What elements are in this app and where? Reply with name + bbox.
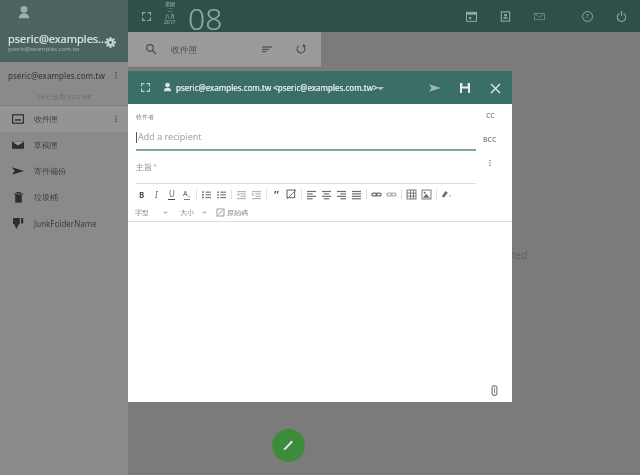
button[interactable]: 主旨 [136,162,476,180]
button[interactable]: 字型 [135,203,149,221]
button[interactable]: Refresh [289,37,313,61]
button[interactable]: Attach [484,380,504,400]
button[interactable]: Insert image [419,185,434,203]
button[interactable]: Insert link [369,185,384,203]
staticText: 八月 [165,13,175,19]
staticText: pseric@examples.com.tw <pseric@examples.… [176,82,378,93]
button[interactable]: Remove link [384,185,399,203]
button[interactable]: Search [134,32,168,66]
staticText: 0% 已使用 3072 MB [37,93,92,101]
staticText: 二 [168,7,173,13]
staticText: ▾ [188,194,191,199]
staticText: 原始碼 [227,208,248,217]
button[interactable]: 原始碼 [217,203,248,221]
staticText: ted [512,248,528,262]
button[interactable]: Text color [179,185,194,203]
staticText: 垃圾桶 [34,192,58,202]
button[interactable]: 收件匣 [0,106,128,132]
staticText: 收件者 [136,113,154,121]
staticText: 收件匣 [34,114,58,124]
button[interactable]: pseric@examples.com.tw [0,62,128,88]
staticText: 字型 [135,208,149,217]
button[interactable]: Power [608,3,634,29]
button[interactable]: Quote [269,185,284,203]
staticText: I [155,189,158,200]
button[interactable]: Align left [304,185,319,203]
staticText: ” [274,187,279,202]
button[interactable]: 垃圾桶 [0,184,128,210]
staticText: ? [586,12,589,20]
staticText: 收件匣 [171,44,198,55]
button[interactable]: JunkFolderName [0,210,128,236]
staticText: 主旨 [136,162,152,172]
button[interactable]: Help [574,3,600,29]
staticText: 星期 [165,1,175,7]
button[interactable]: CC [468,104,512,128]
button[interactable]: Align right [334,185,349,203]
staticText: pseric@examples.com.tw [8,70,105,81]
button[interactable]: Settings [100,32,120,52]
button[interactable]: 寄件備份 [0,158,128,184]
staticText: Add a recipient [138,130,202,142]
button[interactable]: Close [482,75,508,101]
staticText: ▾ [449,193,452,198]
staticText: 寄件備份 [34,166,66,176]
staticText: 2017 [164,19,176,26]
button[interactable]: Add a recipient [136,130,476,148]
staticText: U [169,188,175,199]
staticText: CC [486,111,495,121]
button[interactable]: B [134,185,149,203]
button[interactable]: Sort [255,37,279,61]
staticText: 大小 [180,208,194,217]
staticText: pseric@examples.com.tw [8,45,80,53]
staticText: 草稿匣 [34,140,58,150]
staticText: pseric@examples... [8,31,107,46]
button[interactable]: BCC [468,128,512,152]
button[interactable]: I [149,185,164,203]
button[interactable]: More options [468,152,512,174]
staticText: BCC [483,135,497,145]
button[interactable]: 大小 [180,203,194,221]
staticText: A [183,189,188,199]
button[interactable]: Save [452,75,478,101]
button[interactable]: 草稿匣 [0,132,128,158]
button[interactable]: Mail [526,3,552,29]
button[interactable]: U [164,185,179,203]
button[interactable]: Increase indent [249,185,264,203]
button[interactable]: Expand [133,71,157,104]
staticText: 08 [188,0,223,30]
staticText: JunkFolderName [34,218,97,229]
button[interactable]: Decrease indent [234,185,249,203]
staticText: B [139,189,145,200]
button[interactable]: Insert table [404,185,419,203]
button[interactable]: Clear format [284,185,299,203]
button[interactable]: Compose [272,429,305,462]
button[interactable]: Highlight [439,185,454,203]
button[interactable]: Bulleted list [214,185,229,203]
button[interactable]: Contacts [492,3,518,29]
staticText: * [152,162,157,170]
button[interactable]: Numbered list [199,185,214,203]
button[interactable]: Calendar [458,3,484,29]
button[interactable]: Justify [349,185,364,203]
button[interactable]: Fullscreen [130,0,162,32]
button[interactable]: Send [422,75,448,101]
button[interactable]: Align center [319,185,334,203]
